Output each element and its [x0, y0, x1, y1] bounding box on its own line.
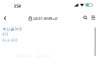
button[interactable]: Menu [89, 13, 98, 23]
button[interactable]: Back [1, 13, 10, 23]
staticText: 부산울역우 [2, 27, 22, 31]
staticText: 24:41:3694(+2) [33, 16, 57, 21]
staticText: #프로-#24 [2, 39, 17, 42]
staticText: #24 [2, 33, 8, 36]
button[interactable]: Search [81, 13, 90, 23]
button[interactable]: #프로-#24 [2, 39, 17, 42]
button[interactable]: #24 [2, 33, 8, 36]
staticText: 2024. 8. 4. 오후 3:54 [16, 54, 49, 58]
button[interactable]: 부산울역우 [2, 27, 22, 31]
staticText: 3:54 [14, 3, 21, 8]
